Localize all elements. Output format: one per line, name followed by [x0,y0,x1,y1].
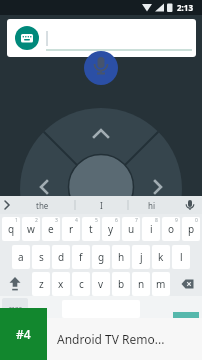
button[interactable]: t [82,217,100,241]
staticText: 0 [195,217,198,224]
button[interactable]: n [132,272,150,296]
staticText: w [27,222,35,236]
staticText: o [168,222,175,236]
button[interactable]: y [102,217,120,241]
button[interactable]: m [152,272,170,296]
staticText: g [98,250,105,264]
button[interactable]: p [182,217,200,241]
staticText: p [188,222,195,236]
staticText: 8 [155,217,158,224]
staticText: 2 [35,217,38,224]
button[interactable]: j [132,245,150,269]
staticText: y [108,222,114,236]
staticText: I [100,200,103,211]
staticText: x [58,277,64,291]
button[interactable] [15,26,39,50]
staticText: i [150,222,153,236]
button[interactable] [30,172,58,196]
button[interactable]: l [172,245,190,269]
staticText: s [39,250,44,264]
staticText: r [69,222,74,236]
button[interactable]: g [92,245,110,269]
staticText: 6 [115,217,118,224]
button[interactable]: w [22,217,40,241]
staticText: n [138,277,145,291]
staticText: ?123 [9,305,22,313]
staticText: q [8,222,15,236]
staticText: hi [148,200,156,211]
staticText: 5 [95,217,98,224]
button[interactable]: b [112,272,130,296]
button[interactable]: k [152,245,170,269]
button[interactable] [86,118,116,144]
button[interactable]: d [52,245,70,269]
staticText: v [98,277,104,291]
button[interactable]: r [62,217,80,241]
staticText: 9 [175,217,178,224]
staticText: j [140,250,143,264]
button[interactable]: I [75,196,128,214]
button[interactable]: z [32,272,50,296]
button[interactable] [46,30,192,51]
staticText: 3 [55,217,58,224]
button[interactable]: the [10,196,75,214]
button[interactable]: ?123 [2,298,28,318]
staticText: 2:13 [177,2,193,13]
button[interactable]: c [72,272,90,296]
staticText: #4 [16,326,31,342]
button[interactable]: s [32,245,50,269]
button[interactable]: v [92,272,110,296]
staticText: 1 [15,217,18,224]
staticText: 4 [75,217,78,224]
button[interactable]: x [52,272,70,296]
button[interactable]: f [72,245,90,269]
staticText: c [79,277,84,291]
staticText: h [118,250,125,264]
staticText: m [156,277,166,291]
button[interactable]: e [42,217,60,241]
button[interactable] [2,272,28,296]
button[interactable] [144,172,172,196]
button[interactable]: u [122,217,140,241]
staticText: Android TV Remo... [57,331,165,347]
staticText: e [48,222,54,236]
button[interactable] [84,51,118,85]
button[interactable]: i [142,217,160,241]
staticText: a [18,250,24,264]
staticText: u [128,222,135,236]
button[interactable] [173,272,199,296]
staticText: 7 [135,217,138,224]
staticText: b [118,277,125,291]
staticText: l [180,250,183,264]
staticText: the [36,200,49,211]
staticText: f [79,250,83,264]
button[interactable]: hi [128,196,176,214]
button[interactable] [69,157,133,196]
button[interactable]: #4 [0,308,47,360]
staticText: t [89,222,93,236]
staticText: d [58,250,65,264]
button[interactable]: a [12,245,30,269]
button[interactable]: o [162,217,180,241]
button[interactable]: h [112,245,130,269]
staticText: k [158,250,164,264]
button[interactable]: q [2,217,20,241]
staticText: z [39,277,44,291]
